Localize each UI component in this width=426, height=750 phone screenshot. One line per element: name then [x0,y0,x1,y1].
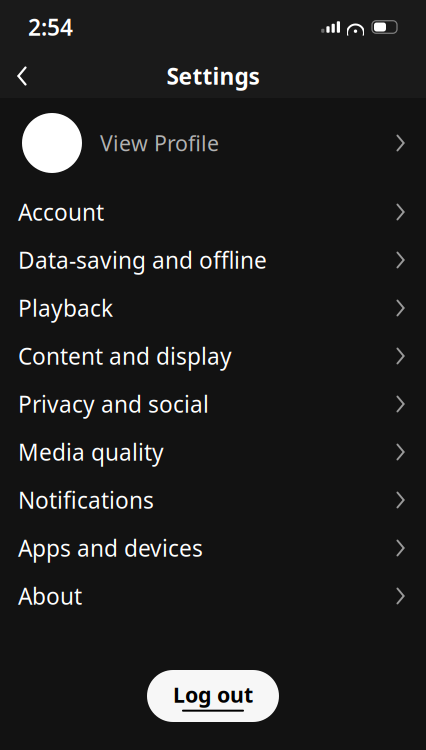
staticText: Media quality [18,437,164,467]
button[interactable]: Account [0,188,426,236]
staticText: Content and display [18,341,232,371]
button[interactable]: Notifications [0,476,426,524]
button[interactable]: Data-saving and offline [0,236,426,284]
staticText: Account [18,197,104,227]
staticText: Playback [18,293,113,323]
button[interactable]: Content and display [0,332,426,380]
staticText: Settings [166,61,259,91]
staticText: View Profile [100,129,219,157]
button[interactable]: Privacy and social [0,380,426,428]
staticText: Notifications [18,485,154,515]
button[interactable]: Apps and devices [0,524,426,572]
staticText: Log out [173,680,253,709]
staticText: 2:54 [28,12,73,42]
button[interactable]: Back [0,54,44,98]
staticText: About [18,581,82,611]
button[interactable]: Media quality [0,428,426,476]
button[interactable]: Log out [147,670,279,722]
staticText: Privacy and social [18,389,209,419]
button[interactable]: Playback [0,284,426,332]
staticText: Data-saving and offline [18,245,267,275]
button[interactable]: View Profile [0,98,426,188]
staticText: Apps and devices [18,533,203,563]
button[interactable]: About [0,572,426,620]
